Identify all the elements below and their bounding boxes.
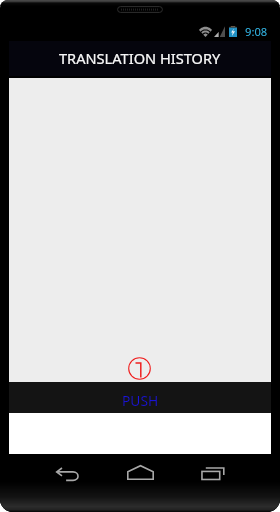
staticText: PUSH	[122, 391, 159, 410]
button[interactable]: Home	[118, 455, 162, 489]
button[interactable]: Back	[45, 457, 89, 491]
staticText: TRANSLATION HISTORY	[59, 48, 221, 68]
button[interactable]: Recent apps	[191, 456, 235, 490]
staticText: 9:08	[245, 24, 268, 39]
button[interactable]: PUSH	[9, 382, 271, 413]
